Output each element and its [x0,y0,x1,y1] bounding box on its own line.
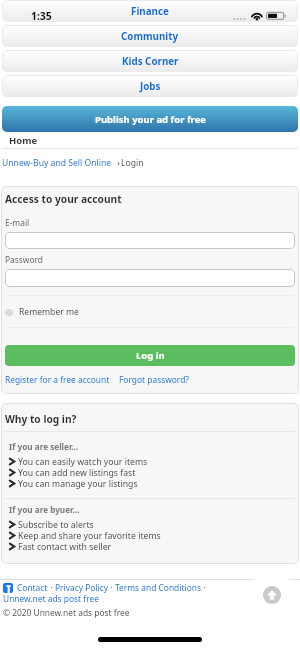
staticText: Publish your ad for free [95,113,206,126]
staticText: 1:35 [31,9,52,22]
button[interactable]: Terms and Conditions [115,582,201,593]
button[interactable] [5,232,295,249]
button[interactable]: Privacy Policy [55,582,108,593]
staticText: © 2020 Unnew.net ads post free [3,607,130,618]
staticText: E-mail [5,217,30,228]
staticText: Password [5,254,43,265]
button[interactable]: Remember me [5,306,79,318]
button[interactable]: Forgot password? [119,374,189,385]
button[interactable]: Contact [17,582,48,593]
staticText: You can manage your listings [18,478,138,489]
staticText: Access to your account [5,192,122,206]
button[interactable]: Unnew-Buy and Sell Online [2,157,112,169]
staticText: Community [121,30,179,43]
staticText: You can add new listings fast [18,467,136,478]
staticText: Keep and share your favorite items [18,530,161,541]
staticText: Why to log in? [5,412,77,426]
staticText: · [201,582,206,593]
staticText: Log in [136,349,165,362]
button[interactable]: Publish your ad for free [2,106,298,132]
staticText: Login [121,157,144,169]
button[interactable]: Kids Corner [2,50,298,72]
staticText: You can easily watch your items [18,456,148,467]
staticText: Remember me [19,306,79,318]
staticText: Subscribe to alerts [18,519,94,530]
staticText: › [117,156,120,169]
staticText: · [48,582,55,593]
staticText: · [108,582,115,593]
button[interactable]: Unnew.net ads post free [3,593,99,604]
button[interactable]: Register for a free account [5,374,110,385]
button[interactable]: Jobs [2,75,298,97]
staticText: Jobs [140,80,161,93]
button[interactable] [5,269,295,287]
staticText: Fast contact with seller [18,541,112,552]
button[interactable]: Scroll to top [253,577,290,612]
staticText: If you are seller... [9,441,79,452]
button[interactable]: Log in [5,345,295,366]
button[interactable]: Finance [2,0,298,22]
staticText: Kids Corner [122,55,179,68]
staticText: Home [9,134,38,147]
staticText: Finance [131,5,169,18]
staticText: If you are byuer... [9,504,80,515]
button[interactable]: Community [2,25,298,47]
